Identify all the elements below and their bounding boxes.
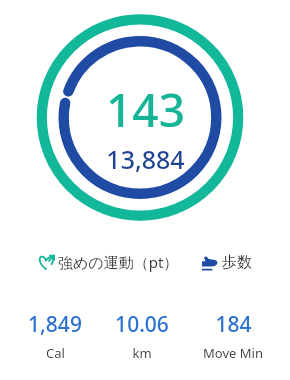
other: Heart Points <box>38 254 55 271</box>
staticText: 13,884 <box>106 142 185 176</box>
staticText: 歩数 <box>222 253 252 272</box>
other: Steps <box>201 254 218 271</box>
staticText: 10.06 <box>115 310 169 339</box>
staticText: 143 <box>106 78 185 141</box>
staticText: 184 <box>215 310 252 339</box>
staticText: Cal <box>46 344 65 362</box>
staticText: 1,849 <box>28 310 82 339</box>
button[interactable]: 1,849 <box>22 308 88 364</box>
button[interactable]: Steps <box>199 249 254 276</box>
staticText: km <box>132 344 152 362</box>
staticText: Move Min <box>203 344 263 362</box>
staticText: 強めの運動（pt） <box>58 252 179 272</box>
button[interactable]: 184 <box>197 308 269 364</box>
button[interactable]: 10.06 <box>109 308 175 364</box>
button[interactable]: 143 <box>0 0 290 236</box>
button[interactable]: Heart Points <box>36 248 181 276</box>
